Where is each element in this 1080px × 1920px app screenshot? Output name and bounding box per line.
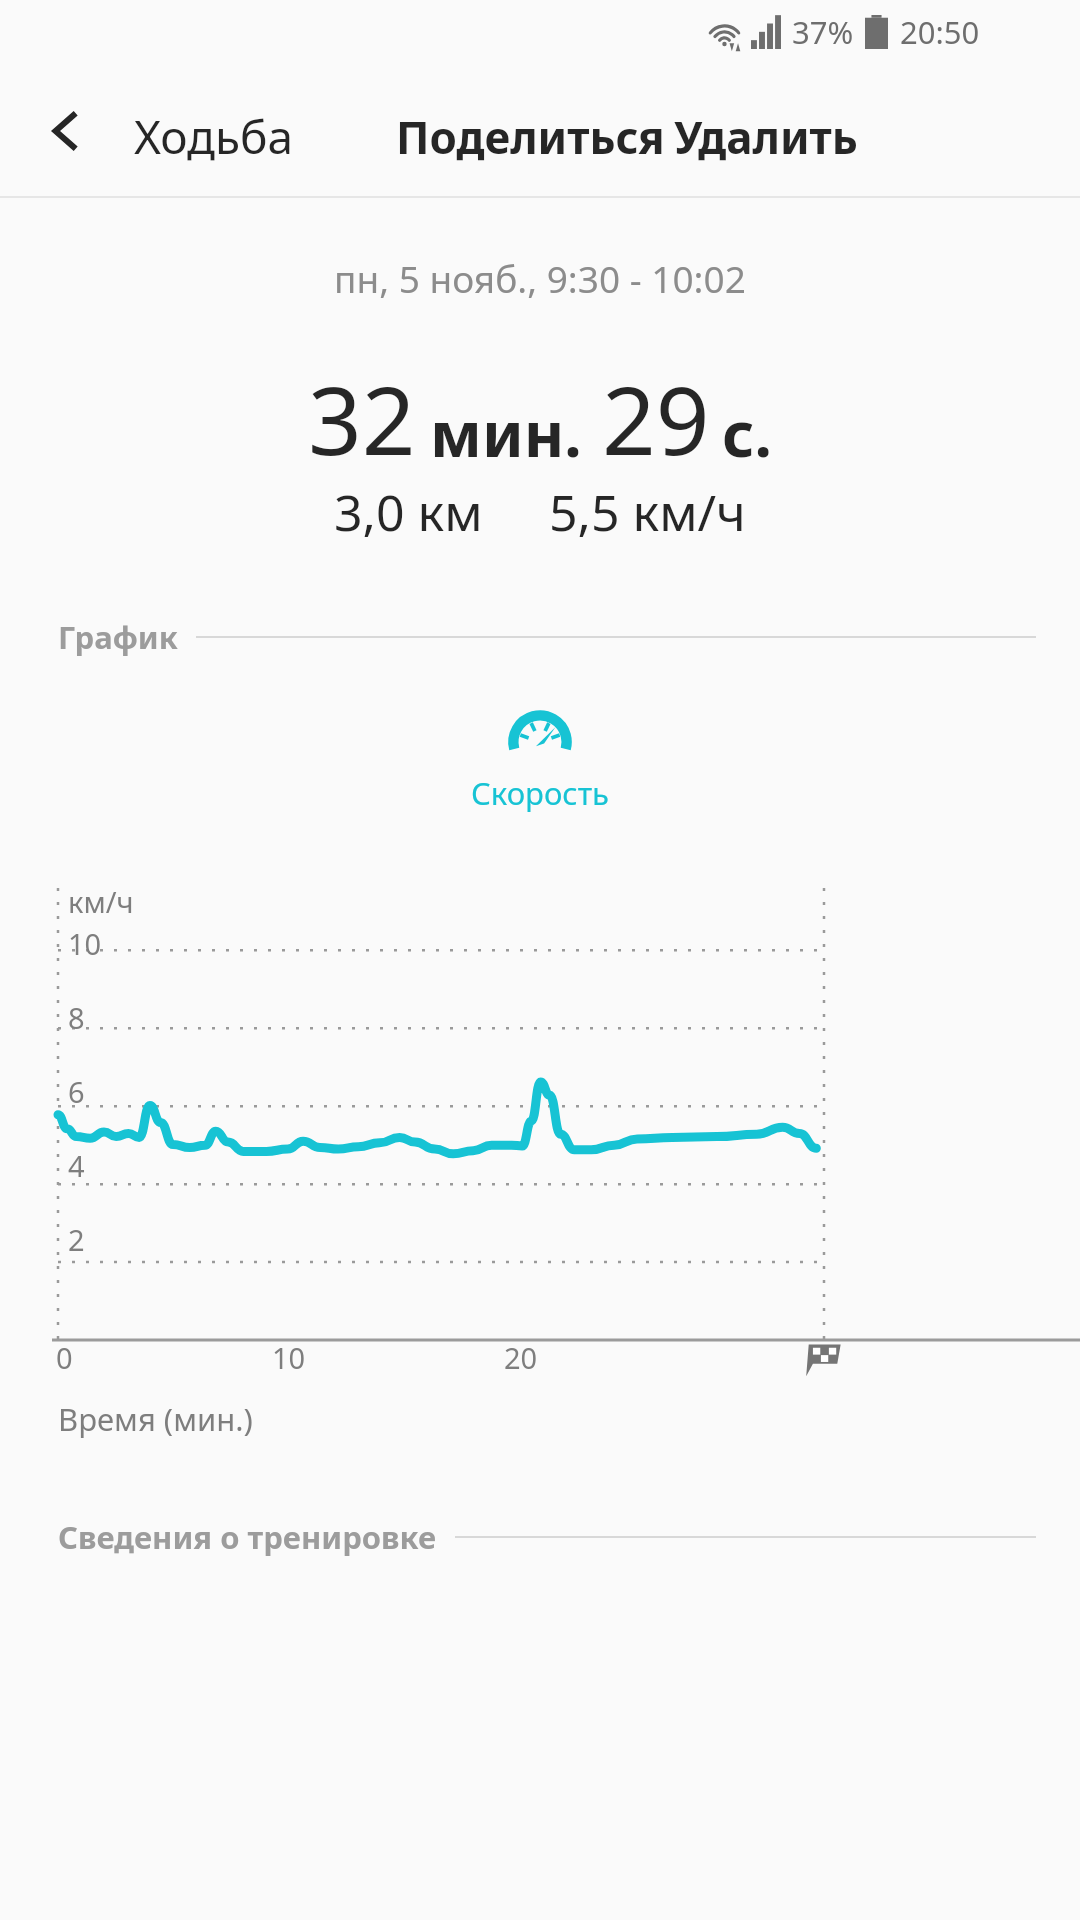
button[interactable]: Назад [20,90,116,172]
staticText: 3,0 км [334,478,483,546]
staticText: 0 [56,1338,73,1377]
staticText: 5,5 км/ч [549,478,746,546]
staticText: Поделиться [396,107,665,167]
staticText: пн, 5 нояб., 9:30 - 10:02 [334,253,746,303]
staticText: 2 [68,1220,85,1259]
staticText: Ходьба [134,105,294,168]
staticText: 6 [68,1072,85,1111]
button[interactable]: Поделиться [388,95,673,179]
button[interactable]: Скорость [441,688,639,824]
button[interactable]: Удалить [666,95,866,179]
staticText: График [58,616,178,658]
staticText: с. [722,391,772,475]
staticText: 32 [308,355,416,483]
button[interactable]: Ходьба [126,93,302,180]
staticText: мин. [430,391,582,475]
staticText: 29 [602,355,710,483]
staticText: 8 [68,998,85,1037]
staticText: 37% [792,11,854,53]
staticText: 20 [504,1338,538,1377]
staticText: 10 [68,924,102,963]
staticText: Время (мин.) [58,1398,253,1440]
staticText: Скорость [471,772,609,814]
other: Финиш [802,1336,844,1378]
staticText: Удалить [674,107,858,167]
staticText: 10 [272,1338,306,1377]
staticText: 20:50 [900,11,980,53]
staticText: км/ч [68,882,134,921]
staticText: 4 [68,1146,85,1185]
staticText: Сведения о тренировке [58,1516,437,1558]
